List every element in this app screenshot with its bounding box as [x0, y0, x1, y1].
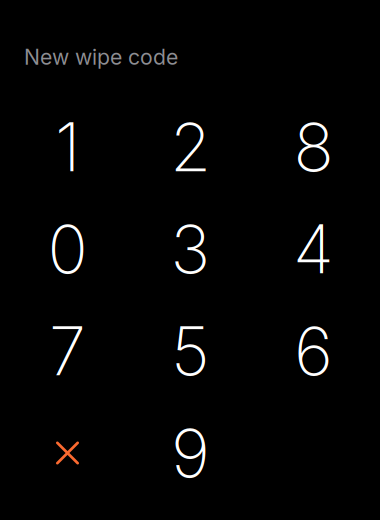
staticText: 1: [55, 107, 80, 187]
staticText: 6: [294, 311, 333, 391]
button[interactable]: 0: [6, 198, 129, 300]
staticText: 4: [293, 209, 334, 289]
staticText: New wipe code: [24, 44, 178, 70]
button[interactable]: 2: [129, 96, 252, 198]
button[interactable]: 1: [6, 96, 129, 198]
staticText: 3: [170, 209, 210, 289]
button[interactable]: 7: [6, 300, 129, 402]
button[interactable]: 6: [252, 300, 375, 402]
staticText: 2: [170, 107, 211, 187]
button[interactable]: 8: [252, 96, 375, 198]
button[interactable]: 3: [129, 198, 252, 300]
button[interactable]: 5: [129, 300, 252, 402]
button[interactable]: 9: [129, 402, 252, 504]
staticText: 5: [171, 311, 210, 391]
button[interactable]: Delete: [6, 402, 129, 504]
staticText: 9: [171, 413, 210, 493]
staticText: 8: [293, 107, 333, 187]
staticText: 7: [49, 311, 86, 391]
button[interactable]: 4: [252, 198, 375, 300]
staticText: 0: [47, 209, 87, 289]
